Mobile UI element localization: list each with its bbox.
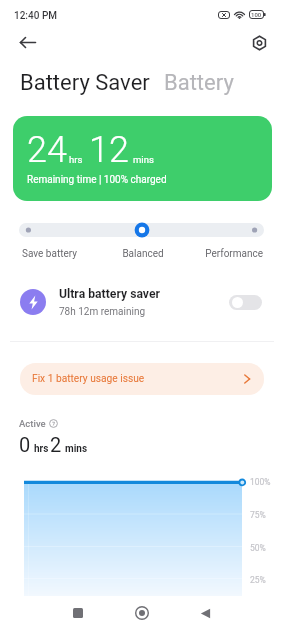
staticText: 78h 12m remaining xyxy=(59,306,146,318)
button[interactable]: Settings xyxy=(244,25,276,57)
staticText: 100 xyxy=(251,11,262,18)
staticText: Fix 1 battery usage issue xyxy=(32,373,242,385)
staticText: Remaining time | 100% charged xyxy=(27,174,167,186)
button[interactable]: Fix 1 battery usage issue xyxy=(20,363,264,395)
staticText: 0 xyxy=(19,433,31,456)
staticText: Ultra battery saver xyxy=(59,287,160,301)
staticText: Active xyxy=(19,418,46,429)
staticText: 24 xyxy=(27,129,67,171)
button[interactable]: Battery xyxy=(164,70,234,96)
staticText: 100% xyxy=(250,477,271,487)
button[interactable]: Recents xyxy=(61,596,95,630)
staticText: Save battery xyxy=(22,248,103,260)
staticText: 75% xyxy=(250,510,266,520)
staticText: 25% xyxy=(250,575,266,585)
staticText: 12:40 PM xyxy=(14,10,58,22)
staticText: 12 xyxy=(89,129,129,171)
staticText: mins xyxy=(133,154,154,165)
button[interactable]: Home xyxy=(125,596,159,630)
staticText: hrs xyxy=(69,154,83,165)
button[interactable]: Battery Saver xyxy=(20,70,150,96)
button[interactable]: Back xyxy=(12,25,44,57)
staticText: mins xyxy=(65,443,88,455)
staticText: 50% xyxy=(250,543,266,553)
staticText: hrs xyxy=(34,443,49,455)
staticText: 2 xyxy=(50,433,62,456)
button[interactable]: Back xyxy=(188,596,222,630)
button[interactable]: 24 xyxy=(13,116,272,201)
button[interactable] xyxy=(19,223,264,237)
button[interactable]: Ultra battery saver xyxy=(0,279,284,325)
button[interactable]: Ultra battery saver toggle xyxy=(229,295,262,310)
staticText: Performance xyxy=(183,248,263,260)
staticText: Balanced xyxy=(103,248,183,260)
